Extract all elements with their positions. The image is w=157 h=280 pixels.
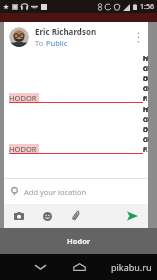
button[interactable]: Profile photo (9, 27, 29, 47)
button[interactable]: Send (123, 207, 141, 225)
button[interactable]: Add your location (4, 179, 148, 204)
button[interactable]: Attach (67, 208, 83, 224)
staticText: Public (46, 38, 68, 48)
staticText: Hodor (67, 236, 91, 246)
button[interactable]: Home (68, 256, 90, 278)
staticText: Add your location (24, 187, 87, 197)
button[interactable]: Camera (11, 208, 27, 224)
button[interactable]: Public (46, 38, 68, 48)
staticText: pikabu.ru (111, 261, 152, 273)
staticText: To (35, 38, 46, 48)
button[interactable]: More options (131, 27, 145, 47)
staticText: HODOR (9, 144, 39, 154)
staticText: Eric Richardson (35, 26, 97, 37)
staticText: 1:56 (140, 2, 154, 12)
button[interactable]: Back (30, 257, 50, 277)
staticText: HODOR (9, 93, 39, 103)
button[interactable]: Emoji (39, 208, 55, 224)
button[interactable]: Hodor (0, 228, 157, 254)
